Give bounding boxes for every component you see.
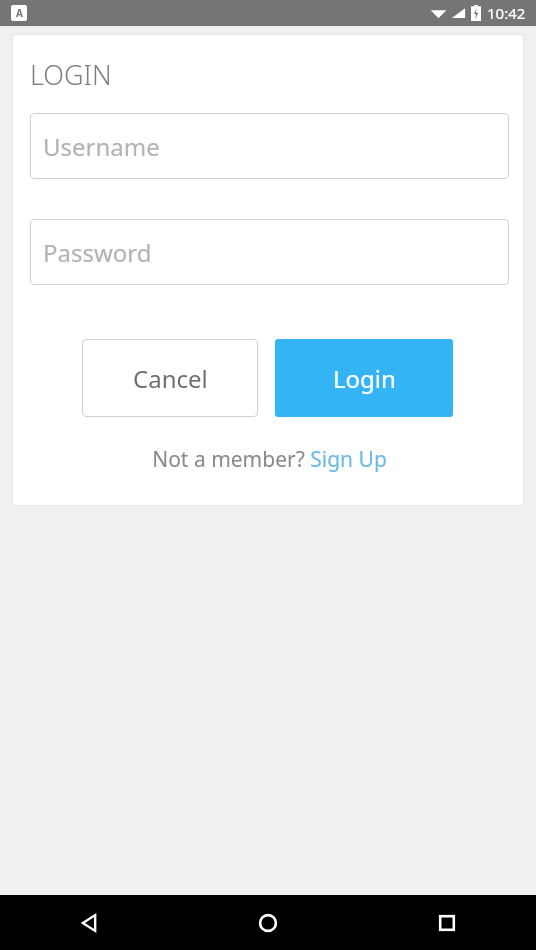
staticText: Login: [333, 362, 396, 395]
button[interactable]: Password: [30, 219, 509, 285]
button[interactable]: Login: [275, 339, 453, 417]
staticText: Username: [43, 130, 160, 163]
button[interactable]: Recent apps: [357, 895, 536, 950]
button[interactable]: Not a member? Sign Up: [30, 445, 509, 474]
staticText: Cancel: [133, 362, 208, 395]
button[interactable]: Username: [30, 113, 509, 179]
staticText: Not a member? Sign Up: [152, 445, 387, 474]
staticText: A: [16, 6, 23, 20]
staticText: LOGIN: [30, 56, 112, 93]
button[interactable]: Home: [178, 895, 357, 950]
staticText: Password: [43, 236, 152, 269]
staticText: 10:42: [487, 3, 526, 23]
button[interactable]: Cancel: [82, 339, 258, 417]
button[interactable]: Back: [0, 895, 178, 950]
